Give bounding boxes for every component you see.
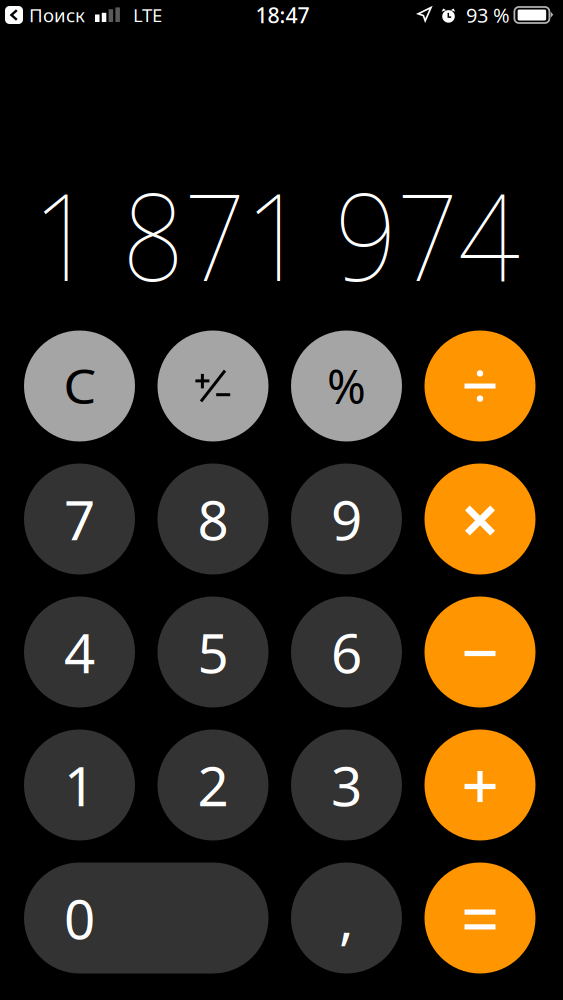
button[interactable]: 5 bbox=[157, 596, 268, 707]
button[interactable]: Toggle sign bbox=[157, 330, 268, 441]
staticText: Поиск bbox=[29, 3, 85, 27]
staticText: , bbox=[339, 882, 354, 954]
staticText: 4 bbox=[64, 616, 95, 688]
staticText: 1 bbox=[64, 749, 95, 821]
staticText: 93 % bbox=[466, 2, 510, 28]
button[interactable]: 3 bbox=[291, 729, 402, 840]
button[interactable]: % bbox=[291, 330, 402, 441]
staticText: 9 bbox=[331, 483, 362, 555]
staticText: 0 bbox=[64, 882, 95, 954]
button[interactable]: Equals bbox=[424, 862, 535, 973]
button[interactable]: 1 bbox=[24, 729, 135, 840]
button[interactable]: Divide bbox=[424, 330, 535, 441]
button[interactable]: 6 bbox=[291, 596, 402, 707]
staticText: 2 bbox=[197, 749, 228, 821]
button[interactable]: Back to Поиск bbox=[5, 3, 89, 27]
staticText: LTE bbox=[133, 3, 162, 27]
staticText: 8 bbox=[197, 483, 228, 555]
button[interactable]: Multiply bbox=[424, 463, 535, 574]
staticText: 7 bbox=[64, 483, 95, 555]
staticText: 3 bbox=[331, 749, 362, 821]
button[interactable]: 8 bbox=[157, 463, 268, 574]
staticText: 5 bbox=[197, 616, 228, 688]
button[interactable]: , bbox=[291, 862, 402, 973]
button[interactable]: 7 bbox=[24, 463, 135, 574]
staticText: 1 871 974 bbox=[7, 155, 545, 314]
button[interactable]: 4 bbox=[24, 596, 135, 707]
staticText: % bbox=[327, 355, 366, 417]
staticText: 18:47 bbox=[255, 1, 309, 29]
button[interactable]: Plus bbox=[424, 729, 535, 840]
staticText: 6 bbox=[331, 616, 362, 688]
button[interactable]: 2 bbox=[157, 729, 268, 840]
button[interactable]: Minus bbox=[424, 596, 535, 707]
button[interactable]: 0 bbox=[24, 862, 268, 973]
button[interactable]: 9 bbox=[291, 463, 402, 574]
button[interactable]: C bbox=[24, 330, 135, 441]
staticText: C bbox=[65, 355, 94, 417]
